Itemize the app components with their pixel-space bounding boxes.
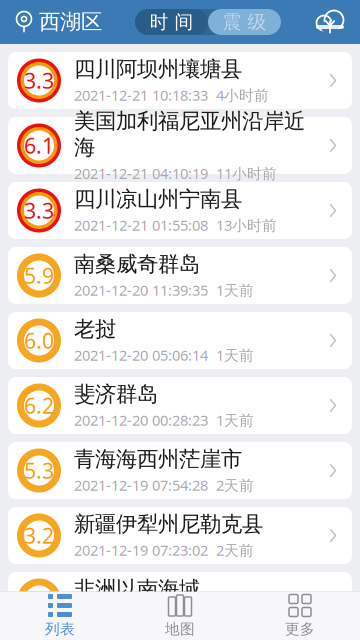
staticText: 震 级 [222, 10, 266, 33]
staticText: 南桑威奇群岛 [74, 251, 200, 277]
staticText: 四川阿坝州壤塘县 [74, 56, 242, 82]
staticText: 5.3 [24, 456, 54, 485]
staticText: 6.0 [24, 326, 54, 355]
staticText: 西湖区 [39, 9, 102, 35]
staticText: 3.2 [24, 521, 54, 550]
staticText: 4小时前 [216, 85, 269, 105]
staticText: 地图 [165, 620, 195, 638]
staticText: 2021-12-19 04:05:44 [74, 605, 208, 625]
staticText: 青海海西州茫崖市 [74, 446, 242, 472]
staticText: 2021-12-19 07:23:02 [74, 540, 208, 560]
staticText: 新疆伊犁州尼勒克县 [74, 511, 263, 537]
staticText: 时 间 [149, 10, 193, 33]
button[interactable]: 西湖区 [0, 0, 102, 44]
staticText: 2021-12-20 11:39:35 [74, 280, 208, 300]
button[interactable]: 3.2 [8, 507, 352, 564]
staticText: 3.3 [24, 66, 54, 95]
button[interactable]: 列表 [0, 592, 120, 640]
staticText: 老挝 [74, 316, 116, 342]
button[interactable]: 3.3 [8, 182, 352, 239]
button[interactable]: 6.0 [8, 312, 352, 369]
button[interactable]: 地图 [120, 592, 240, 640]
staticText: 2天前 [216, 540, 254, 560]
staticText: 5.9 [24, 261, 54, 290]
staticText: 6.1 [24, 131, 54, 160]
button[interactable]: 震 级 [208, 9, 281, 35]
staticText: 5.8 [24, 586, 54, 615]
staticText: 13小时前 [216, 215, 277, 235]
staticText: 2021-12-21 04:10:19 [74, 163, 208, 183]
staticText: 1天前 [216, 410, 254, 430]
staticText: 2021-12-19 07:54:28 [74, 475, 208, 495]
button[interactable]: 时 间 [135, 9, 208, 35]
staticText: 2天前 [216, 475, 254, 495]
staticText: 2021-12-21 01:55:08 [74, 215, 208, 235]
button[interactable]: 5.9 [8, 247, 352, 304]
button[interactable]: 更多 [240, 592, 360, 640]
button[interactable]: 3.3 [8, 52, 352, 109]
button[interactable]: 5.8 [8, 572, 352, 629]
staticText: 1天前 [216, 280, 254, 300]
staticText: 非洲以南海域 [74, 576, 200, 602]
staticText: 斐济群岛 [74, 381, 158, 407]
staticText: 6.2 [24, 391, 54, 420]
staticText: 1天前 [216, 345, 254, 365]
button[interactable]: 5.3 [8, 442, 352, 499]
button[interactable]: 上传 [314, 0, 360, 44]
staticText: 2021-12-21 10:18:33 [74, 85, 208, 105]
button[interactable]: 6.1 [8, 117, 352, 174]
staticText: 3.3 [24, 196, 54, 225]
staticText: 四川凉山州宁南县 [74, 186, 242, 212]
staticText: 美国加利福尼亚州沿岸近海 [74, 108, 305, 160]
staticText: 列表 [45, 620, 75, 638]
staticText: 2021-12-20 00:28:23 [74, 410, 208, 430]
staticText: 2021-12-20 05:06:14 [74, 345, 208, 365]
staticText: 更多 [285, 620, 315, 638]
staticText: 11小时前 [216, 163, 277, 183]
button[interactable]: 6.2 [8, 377, 352, 434]
